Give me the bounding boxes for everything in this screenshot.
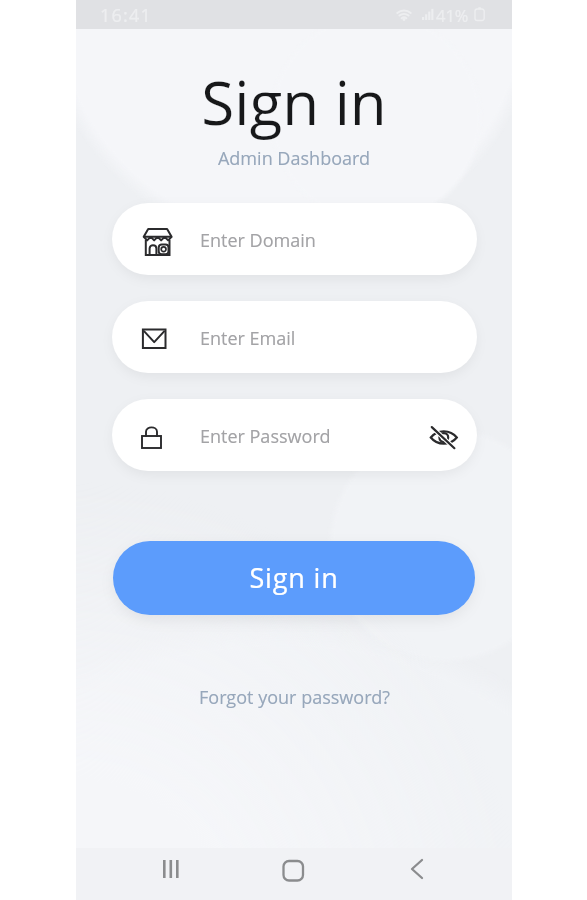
button[interactable]: Sign in — [113, 541, 475, 615]
staticText: Sign in — [76, 61, 512, 143]
staticText: Enter Password — [200, 424, 331, 449]
button[interactable]: Enter Password — [112, 399, 477, 471]
button[interactable]: Enter Domain — [112, 203, 477, 275]
staticText: 16:41 — [100, 3, 152, 28]
staticText: 41% — [436, 4, 469, 26]
staticText: Forgot your password? — [182, 685, 407, 710]
staticText: Sign in — [113, 559, 475, 596]
button[interactable]: Recent apps — [144, 848, 200, 900]
button[interactable]: Back — [389, 848, 445, 900]
staticText: Enter Domain — [200, 228, 316, 253]
staticText: Admin Dashboard — [76, 146, 512, 171]
button[interactable]: Home — [264, 848, 320, 900]
button[interactable]: Show password — [421, 414, 467, 456]
button[interactable]: Enter Email — [112, 301, 477, 373]
staticText: Enter Email — [200, 326, 296, 351]
button[interactable]: Forgot your password? — [182, 682, 407, 714]
